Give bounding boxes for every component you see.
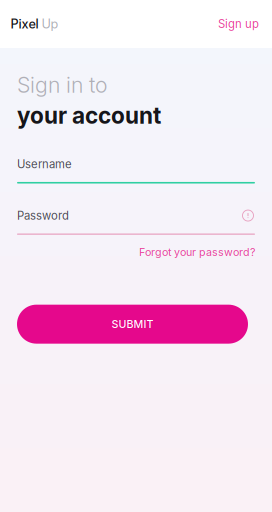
staticText: your account <box>17 102 161 129</box>
staticText: Up <box>41 16 58 32</box>
button[interactable]: Sign up <box>216 8 261 40</box>
staticText: Username <box>17 157 72 171</box>
staticText: Password <box>17 209 69 222</box>
button[interactable]: SUBMIT <box>17 305 248 344</box>
staticText: Sign up <box>218 17 259 31</box>
button[interactable]: Pixel <box>8 7 60 41</box>
staticText: Pixel <box>10 16 38 32</box>
button[interactable]: Forgot your password? <box>139 244 255 261</box>
staticText: SUBMIT <box>111 318 153 331</box>
staticText: Forgot your password? <box>139 246 255 259</box>
staticText: Sign in to <box>17 72 108 98</box>
